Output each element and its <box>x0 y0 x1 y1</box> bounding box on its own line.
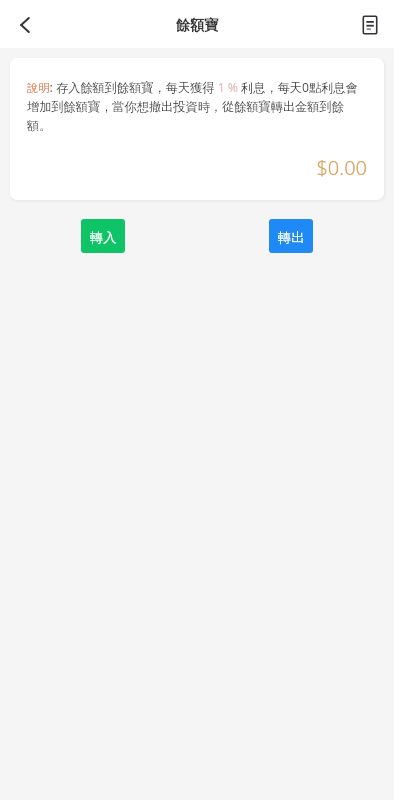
button[interactable]: Records <box>346 0 394 48</box>
button[interactable]: Back <box>0 0 48 48</box>
staticText: 餘額寶 <box>176 17 218 35</box>
button[interactable]: 轉出 <box>269 219 313 253</box>
staticText: 轉出 <box>278 229 305 246</box>
staticText: $0.00 <box>27 154 367 181</box>
button[interactable]: 轉入 <box>81 219 125 253</box>
staticText: 說明: 存入餘額到餘額寶，每天獲得 1 % 利息，每天0點利息會增加到餘額寶，當… <box>27 79 367 134</box>
staticText: 轉入 <box>90 229 117 246</box>
